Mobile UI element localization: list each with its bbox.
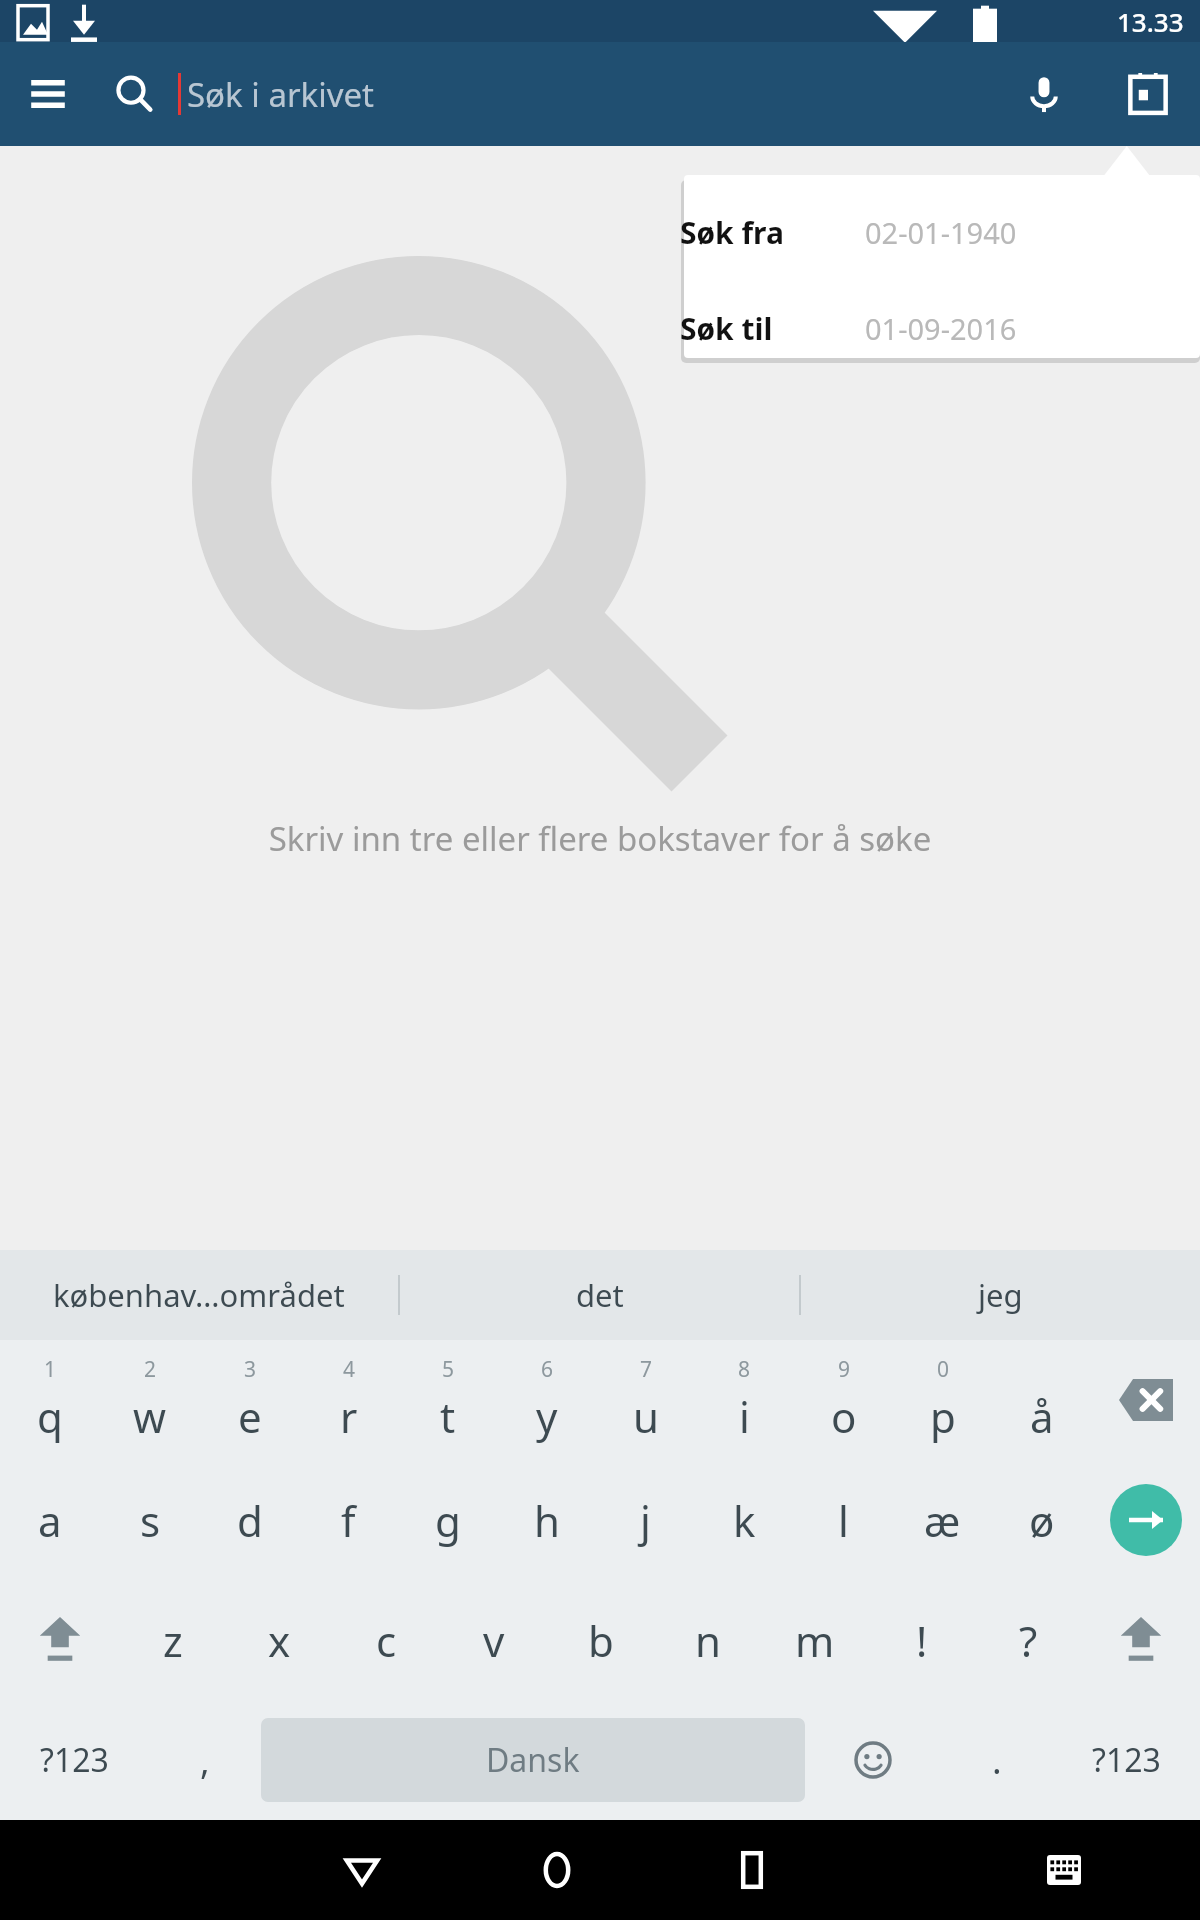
staticText: v	[483, 1612, 505, 1669]
button[interactable]: l	[794, 1460, 893, 1580]
staticText: o	[831, 1388, 857, 1445]
button[interactable]: 2	[100, 1340, 200, 1460]
staticText: å	[1030, 1388, 1054, 1445]
button[interactable]: jeg	[801, 1250, 1200, 1340]
button[interactable]: 9	[794, 1340, 893, 1460]
button[interactable]: det	[400, 1250, 799, 1340]
button[interactable]: Søk til	[0, 308, 1200, 349]
button[interactable]: n	[654, 1580, 761, 1700]
button[interactable]: Menu	[0, 46, 96, 142]
button[interactable]: Emoji	[805, 1700, 941, 1820]
staticText: q	[37, 1388, 63, 1445]
button[interactable]: 8	[695, 1340, 794, 1460]
button[interactable]: Dansk	[261, 1718, 805, 1802]
staticText: Søk fra	[680, 212, 865, 253]
button[interactable]: ?123	[1052, 1700, 1200, 1820]
button[interactable]: københav…området	[0, 1250, 398, 1340]
staticText: 13.33	[1117, 4, 1184, 39]
button[interactable]: v	[440, 1580, 547, 1700]
staticText: 2	[144, 1355, 157, 1384]
button[interactable]: .	[941, 1700, 1052, 1820]
button[interactable]: d	[200, 1460, 299, 1580]
button[interactable]: 3	[200, 1340, 299, 1460]
staticText: københav…området	[53, 1274, 345, 1316]
staticText: 7	[640, 1355, 653, 1384]
staticText: 5	[442, 1355, 455, 1384]
staticText: s	[140, 1492, 161, 1549]
staticText: 6	[541, 1355, 554, 1384]
button[interactable]: Recents	[654, 1820, 849, 1920]
button[interactable]: ,	[149, 1700, 261, 1820]
button[interactable]: z	[119, 1580, 226, 1700]
staticText: 0	[937, 1355, 950, 1384]
button[interactable]: b	[547, 1580, 654, 1700]
staticText: l	[838, 1492, 849, 1549]
button[interactable]: Voice search	[992, 42, 1096, 146]
staticText: !	[916, 1612, 928, 1669]
button[interactable]: Søk fra	[0, 212, 1200, 253]
button[interactable]: 6	[497, 1340, 596, 1460]
staticText: h	[534, 1492, 560, 1549]
staticText: y	[536, 1388, 558, 1445]
staticText: Skriv inn tre eller flere bokstaver for …	[0, 816, 1200, 861]
button[interactable]: k	[695, 1460, 794, 1580]
staticText: d	[237, 1492, 263, 1549]
staticText: m	[795, 1612, 835, 1669]
staticText: .	[992, 1736, 1002, 1785]
button[interactable]: !	[868, 1580, 975, 1700]
button[interactable]: Hide keyboard	[966, 1820, 1161, 1920]
button[interactable]: Home	[459, 1820, 654, 1920]
staticText: x	[268, 1612, 291, 1669]
staticText: g	[435, 1492, 461, 1549]
staticText: Søk til	[680, 308, 865, 349]
button[interactable]: x	[226, 1580, 333, 1700]
staticText: j	[640, 1492, 651, 1549]
button[interactable]: Enter	[1091, 1460, 1200, 1580]
staticText: 9	[838, 1355, 851, 1384]
staticText: u	[633, 1388, 659, 1445]
staticText: 3	[244, 1355, 257, 1384]
button[interactable]: 7	[596, 1340, 695, 1460]
staticText: Dansk	[486, 1738, 580, 1782]
staticText: c	[376, 1612, 397, 1669]
button[interactable]: æ	[893, 1460, 992, 1580]
button[interactable]: Date filter	[1096, 42, 1200, 146]
button[interactable]: 5	[398, 1340, 497, 1460]
button[interactable]: Search	[96, 56, 172, 132]
button[interactable]: c	[333, 1580, 440, 1700]
staticText: ?123	[1092, 1738, 1161, 1782]
button[interactable]: Back	[264, 1820, 459, 1920]
staticText: f	[341, 1492, 356, 1549]
button[interactable]: Shift	[1082, 1580, 1200, 1700]
staticText: 01-09-2016	[865, 309, 1017, 348]
button[interactable]: ø	[992, 1460, 1091, 1580]
staticText: jeg	[978, 1274, 1023, 1316]
button[interactable]: s	[100, 1460, 200, 1580]
button[interactable]: g	[398, 1460, 497, 1580]
button[interactable]: ?	[975, 1580, 1082, 1700]
staticText: p	[930, 1388, 956, 1445]
staticText: k	[733, 1492, 756, 1549]
staticText: 1	[44, 1355, 57, 1384]
staticText: 8	[738, 1355, 751, 1384]
button[interactable]: f	[299, 1460, 398, 1580]
staticText: t	[440, 1388, 456, 1445]
staticText: 4	[343, 1355, 356, 1384]
button[interactable]: Shift	[0, 1580, 119, 1700]
staticText: z	[163, 1612, 183, 1669]
button[interactable]: å	[992, 1340, 1091, 1460]
staticText: e	[238, 1388, 262, 1445]
button[interactable]: h	[497, 1460, 596, 1580]
button[interactable]: a	[0, 1460, 100, 1580]
staticText: w	[133, 1388, 167, 1445]
button[interactable]: 4	[299, 1340, 398, 1460]
button[interactable]: Backspace	[1091, 1340, 1200, 1460]
button[interactable]: 1	[0, 1340, 100, 1460]
staticText: ?123	[40, 1738, 109, 1782]
staticText: ?	[1019, 1612, 1038, 1669]
button[interactable]: j	[596, 1460, 695, 1580]
button[interactable]: m	[761, 1580, 868, 1700]
staticText: i	[739, 1388, 750, 1445]
button[interactable]: ?123	[0, 1700, 149, 1820]
button[interactable]: 0	[893, 1340, 992, 1460]
